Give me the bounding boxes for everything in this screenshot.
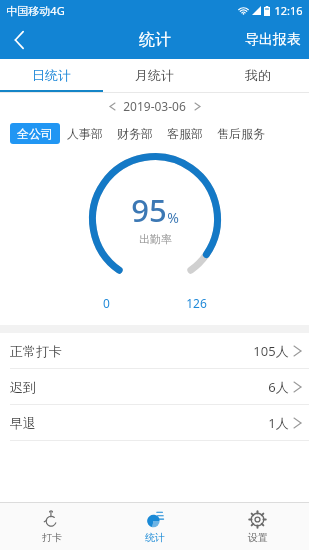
button[interactable]: 我的 bbox=[206, 59, 309, 90]
button[interactable]: 售后服务 bbox=[210, 123, 272, 144]
staticText: 中国移动4G bbox=[6, 3, 65, 18]
button[interactable]: 统计 bbox=[103, 503, 206, 550]
staticText: 迟到 bbox=[10, 379, 36, 395]
staticText: 126 bbox=[186, 295, 207, 311]
staticText: 日统计 bbox=[32, 67, 71, 83]
staticText: 打卡 bbox=[42, 531, 62, 544]
button[interactable]: 月统计 bbox=[103, 59, 206, 90]
staticText: 我的 bbox=[245, 67, 271, 83]
button[interactable]: 设置 bbox=[206, 503, 309, 550]
staticText: 0 bbox=[103, 295, 110, 311]
staticText: 人事部 bbox=[67, 126, 103, 141]
button[interactable]: Next day bbox=[188, 97, 206, 115]
staticText: 导出报表 bbox=[245, 31, 301, 49]
button[interactable]: 人事部 bbox=[60, 123, 110, 144]
staticText: 统计 bbox=[145, 531, 165, 544]
staticText: 6人 bbox=[268, 378, 289, 396]
staticText: 设置 bbox=[248, 531, 268, 544]
button[interactable]: Previous day bbox=[103, 97, 121, 115]
staticText: 95 bbox=[131, 189, 167, 231]
button[interactable]: 早退 bbox=[0, 405, 309, 440]
button[interactable]: 迟到 bbox=[0, 369, 309, 404]
staticText: 105人 bbox=[253, 342, 289, 360]
staticText: % bbox=[167, 208, 179, 227]
staticText: 统计 bbox=[139, 30, 171, 50]
staticText: 1人 bbox=[268, 414, 289, 432]
staticText: 出勤率 bbox=[139, 232, 172, 246]
staticText: 早退 bbox=[10, 415, 36, 431]
button[interactable]: 打卡 bbox=[0, 503, 103, 550]
button[interactable]: 正常打卡 bbox=[0, 333, 309, 368]
button[interactable]: 日统计 bbox=[0, 59, 103, 90]
staticText: 12:16 bbox=[274, 3, 303, 18]
button[interactable]: 导出报表 bbox=[237, 23, 309, 57]
staticText: 月统计 bbox=[135, 67, 174, 83]
staticText: 客服部 bbox=[167, 126, 203, 141]
staticText: 正常打卡 bbox=[10, 343, 62, 359]
button[interactable]: 财务部 bbox=[110, 123, 160, 144]
button[interactable]: 客服部 bbox=[160, 123, 210, 144]
staticText: 2019-03-06 bbox=[123, 98, 186, 114]
button[interactable]: Back bbox=[0, 21, 38, 59]
staticText: 售后服务 bbox=[217, 126, 265, 141]
button[interactable]: 全公司 bbox=[10, 123, 60, 144]
staticText: 财务部 bbox=[117, 126, 153, 141]
staticText: 全公司 bbox=[17, 126, 53, 141]
